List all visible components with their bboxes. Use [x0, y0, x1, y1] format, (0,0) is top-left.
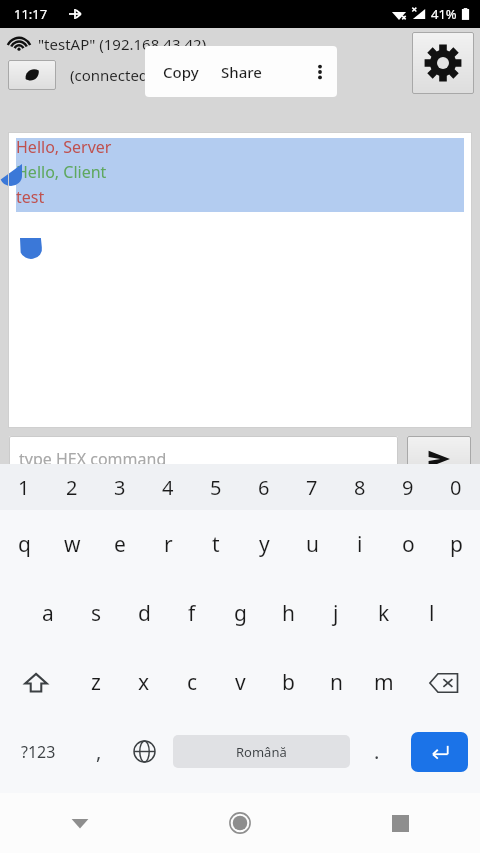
button[interactable]: Settings	[412, 32, 474, 94]
button[interactable]: Enter	[411, 732, 468, 772]
staticText: a	[42, 599, 54, 628]
button[interactable]: Backspace	[408, 648, 480, 717]
button[interactable]: Leaf	[8, 60, 56, 90]
button[interactable]: Română	[173, 735, 350, 768]
button[interactable]: q	[0, 510, 48, 579]
staticText: 41%	[431, 5, 457, 23]
button[interactable]: 7	[288, 464, 336, 510]
button[interactable]: type HEX command	[9, 436, 398, 482]
button[interactable]: z	[72, 648, 120, 717]
button[interactable]: 4	[144, 464, 192, 510]
staticText: Hello, Server	[16, 136, 112, 161]
staticText: l	[429, 599, 435, 628]
button[interactable]: 0	[432, 464, 480, 510]
button[interactable]: a	[24, 579, 72, 648]
staticText: h	[282, 599, 295, 628]
button[interactable]: i	[336, 510, 384, 579]
button[interactable]: u	[288, 510, 336, 579]
staticText: x	[138, 668, 150, 697]
button[interactable]: 6	[240, 464, 288, 510]
button[interactable]: Recent apps	[320, 793, 480, 853]
button[interactable]: w	[48, 510, 96, 579]
button[interactable]: Change language	[120, 717, 168, 786]
button[interactable]: m	[360, 648, 408, 717]
button[interactable]: Home	[160, 793, 320, 853]
staticText: s	[91, 599, 102, 628]
staticText: 4	[162, 474, 174, 501]
staticText: b	[282, 668, 295, 697]
button[interactable]: f	[168, 579, 216, 648]
button[interactable]: g	[216, 579, 264, 648]
staticText: 11:17	[14, 5, 48, 23]
button[interactable]: k	[360, 579, 408, 648]
button[interactable]: j	[312, 579, 360, 648]
button[interactable]: s	[72, 579, 120, 648]
staticText: q	[18, 530, 31, 559]
staticText: Română	[236, 743, 287, 761]
staticText: w	[64, 530, 81, 559]
staticText: k	[378, 599, 390, 628]
staticText: t	[212, 530, 220, 559]
button[interactable]: Back	[0, 793, 160, 853]
button[interactable]: x	[120, 648, 168, 717]
staticText: 1	[18, 474, 30, 501]
staticText: c	[187, 668, 198, 697]
button[interactable]: v	[216, 648, 264, 717]
staticText: 6	[258, 474, 270, 501]
staticText: test	[16, 186, 45, 211]
staticText: f	[188, 599, 196, 628]
button[interactable]: Copy	[163, 62, 199, 82]
button[interactable]: Share	[221, 62, 262, 82]
staticText: 0	[450, 474, 462, 501]
staticText: r	[164, 530, 173, 559]
button[interactable]: h	[264, 579, 312, 648]
staticText: 8	[354, 474, 366, 501]
staticText: p	[450, 530, 463, 559]
staticText: y	[259, 530, 270, 559]
button[interactable]: d	[120, 579, 168, 648]
button[interactable]: l	[408, 579, 456, 648]
staticText: 7	[306, 474, 318, 501]
button[interactable]: ?123	[0, 717, 77, 786]
staticText: n	[330, 668, 343, 697]
button[interactable]: y	[240, 510, 288, 579]
button[interactable]: 8	[336, 464, 384, 510]
button[interactable]: n	[312, 648, 360, 717]
staticText: v	[235, 668, 246, 697]
button[interactable]: 1	[0, 464, 48, 510]
staticText: "testAP" (192.168.43.42)	[38, 34, 207, 54]
staticText: 2	[66, 474, 78, 501]
button[interactable]: r	[144, 510, 192, 579]
staticText: 5	[210, 474, 222, 501]
staticText: Share	[221, 62, 262, 82]
button[interactable]: 5	[192, 464, 240, 510]
button[interactable]: p	[432, 510, 480, 579]
button[interactable]: 9	[384, 464, 432, 510]
button[interactable]: .	[355, 717, 398, 786]
button[interactable]: c	[168, 648, 216, 717]
staticText: m	[374, 668, 394, 697]
button[interactable]: ,	[77, 717, 120, 786]
staticText: .	[374, 738, 380, 765]
staticText: z	[91, 668, 101, 697]
button[interactable]: Send	[407, 436, 471, 482]
staticText: 9	[402, 474, 414, 501]
button[interactable]: Shift	[0, 648, 72, 717]
staticText: g	[234, 599, 247, 628]
staticText: j	[333, 599, 339, 628]
button[interactable]: t	[192, 510, 240, 579]
button[interactable]: o	[384, 510, 432, 579]
button[interactable]: 3	[96, 464, 144, 510]
staticText: i	[357, 530, 363, 559]
button[interactable]: e	[96, 510, 144, 579]
button[interactable]: b	[264, 648, 312, 717]
button[interactable]: More options	[303, 55, 337, 89]
staticText: u	[306, 530, 319, 559]
staticText: e	[114, 530, 126, 559]
other: Leaf	[24, 67, 40, 83]
staticText: Hello, Client	[16, 161, 107, 186]
button[interactable]: 2	[48, 464, 96, 510]
staticText: 3	[114, 474, 126, 501]
staticText: ,	[96, 738, 102, 765]
staticText: o	[402, 530, 415, 559]
